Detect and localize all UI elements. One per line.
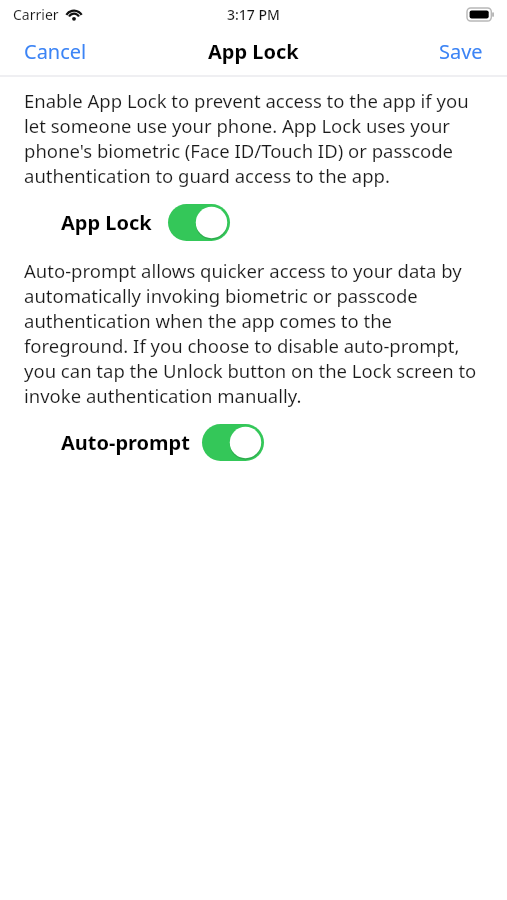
staticText: Save [439,38,483,65]
button[interactable]: Cancel [0,30,111,73]
staticText: App Lock [208,38,299,65]
button[interactable]: Save [415,30,507,73]
staticText: App Lock [61,209,152,236]
staticText: 3:17 PM [227,5,280,24]
staticText: Auto-prompt allows quicker access to you… [24,258,495,408]
staticText: Cancel [24,38,87,65]
staticText: Carrier [13,5,59,24]
staticText: Enable App Lock to prevent access to the… [24,88,489,188]
button[interactable]: Auto-prompt toggle [202,424,264,461]
button[interactable]: App Lock toggle [168,204,230,241]
staticText: Auto-prompt [61,429,190,456]
